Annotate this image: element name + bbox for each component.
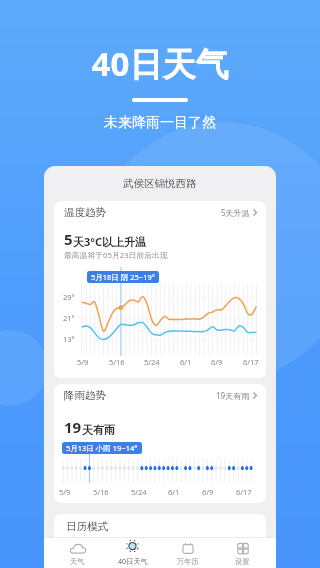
button[interactable]: 5天升温 [219, 204, 259, 221]
staticText: 5/16 [109, 357, 125, 367]
staticText: 6/1 [168, 487, 180, 497]
staticText: 19天有雨 [216, 390, 250, 401]
staticText: 40日天气 [0, 41, 320, 86]
staticText: 5 [64, 229, 73, 249]
staticText: 5/24 [144, 357, 160, 367]
button[interactable]: 设置 [215, 538, 270, 568]
staticText: 6/1 [180, 357, 192, 367]
button[interactable]: 万年历 [160, 538, 215, 568]
staticText: 天有雨 [82, 423, 115, 437]
staticText: 日历模式 [66, 520, 108, 533]
staticText: 6/17 [243, 357, 259, 367]
button[interactable]: 19天有雨 [214, 387, 259, 404]
staticText: 6/17 [236, 487, 252, 497]
staticText: 5月18日 阴 25~19° [91, 272, 155, 282]
staticText: 天3°C以上升温 [73, 234, 147, 249]
staticText: 5/9 [77, 357, 89, 367]
button[interactable]: 40日天气 [105, 538, 160, 568]
button[interactable]: 天气 [50, 538, 105, 568]
staticText: 5月13日 小雨 19~14° [66, 443, 138, 453]
staticText: 6/9 [202, 487, 214, 497]
staticText: 5天升温 [221, 207, 250, 218]
staticText: 天气 [70, 557, 85, 566]
staticText: 5/24 [131, 487, 147, 497]
staticText: 温度趋势 [64, 206, 106, 219]
staticText: 万年历 [177, 557, 199, 566]
staticText: 最高温将于05月23日前后出现 [64, 250, 168, 261]
staticText: 未来降雨一目了然 [0, 114, 320, 132]
staticText: 13° [63, 334, 75, 344]
staticText: 5/16 [93, 487, 109, 497]
staticText: 6/9 [211, 357, 223, 367]
staticText: 40日天气 [118, 556, 148, 566]
staticText: 5/9 [59, 487, 71, 497]
staticText: 21° [63, 313, 75, 323]
staticText: 武侯区锦悦西路 [123, 177, 197, 190]
staticText: 设置 [235, 557, 250, 566]
staticText: 19 [64, 417, 82, 437]
staticText: 29° [63, 292, 75, 302]
staticText: 降雨趋势 [64, 389, 106, 402]
